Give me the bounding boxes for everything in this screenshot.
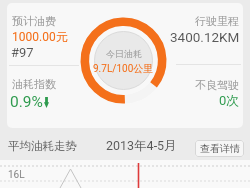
staticText: 3400.12KM <box>170 29 240 45</box>
staticText: 行驶里程 <box>195 14 239 28</box>
staticText: 查看详情 <box>200 142 240 155</box>
staticText: 今日油耗 <box>106 48 142 59</box>
staticText: 预计油费 <box>12 14 56 28</box>
staticText: 1000.00元 <box>12 29 68 44</box>
button[interactable]: 查看详情 <box>195 140 244 157</box>
staticText: 0.9% <box>10 93 43 111</box>
staticText: #97 <box>11 45 34 60</box>
staticText: 平均油耗走势 <box>8 139 77 153</box>
staticText: 油耗指数 <box>12 77 56 91</box>
staticText: 16L <box>8 169 25 181</box>
button[interactable]: 预计油费 <box>12 14 56 28</box>
staticText: 9.7L/100公里 <box>93 62 154 75</box>
staticText: 不良驾驶 <box>195 78 239 92</box>
staticText: 0次 <box>219 92 240 108</box>
staticText: 2013年4-5月 <box>106 138 177 154</box>
